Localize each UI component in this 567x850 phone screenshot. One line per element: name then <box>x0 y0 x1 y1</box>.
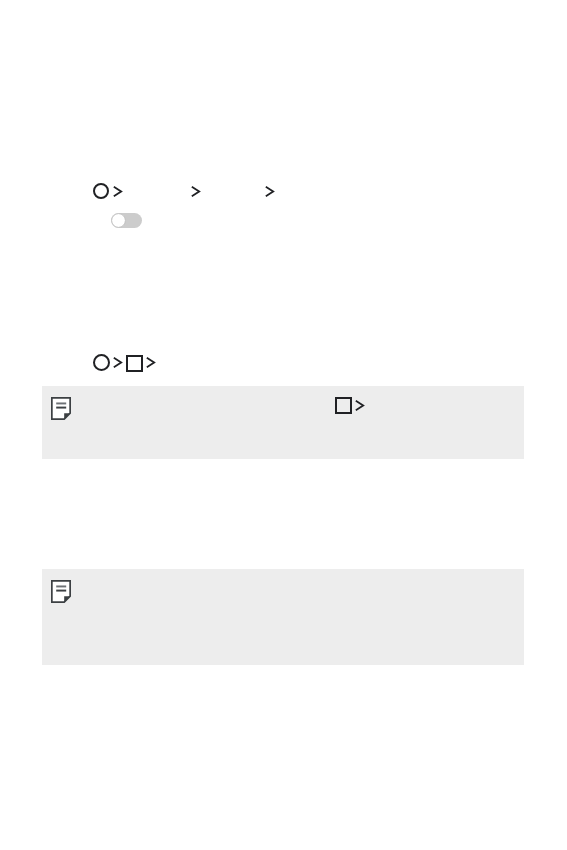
button[interactable]: Note callout <box>42 569 524 665</box>
button[interactable]: Toggle setting <box>111 213 142 228</box>
button[interactable]: Note callout <box>42 386 524 459</box>
